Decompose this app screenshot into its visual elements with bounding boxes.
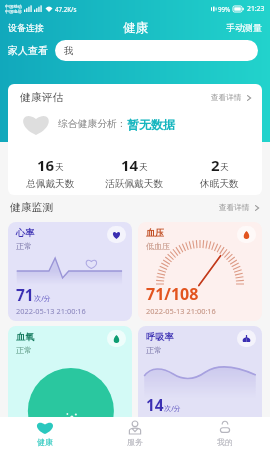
staticText: 血氧 (16, 331, 35, 343)
other: Blood oxygen (107, 330, 126, 347)
button[interactable]: 71/108 (138, 222, 262, 321)
button[interactable]: 14 (138, 326, 262, 425)
button[interactable]: 服务 (90, 417, 180, 450)
staticText: 中国移动 (5, 4, 22, 9)
staticText: 呼吸率 (146, 331, 174, 343)
staticText: 综合健康分析： (58, 118, 127, 130)
button[interactable]: 我的 (180, 417, 270, 450)
staticText: 心率 (16, 227, 35, 239)
staticText: 手动测量 (226, 22, 262, 33)
button[interactable]: 手动测量 (220, 20, 270, 35)
button[interactable]: 设备连接 (0, 20, 50, 35)
button[interactable]: 我 (55, 40, 258, 61)
button[interactable]: 查看详情 (211, 93, 253, 103)
staticText: 2022-05-13 21:00:16 (146, 306, 216, 316)
staticText: 2022-05-13 21:00:16 (16, 306, 86, 316)
staticText: 中国电信 (5, 9, 22, 14)
staticText: 天 (139, 162, 148, 173)
other: Respiratory rate (237, 330, 256, 347)
staticText: 正常 (16, 345, 32, 355)
staticText: 低血压 (146, 241, 170, 251)
staticText: 21:23 (247, 4, 265, 13)
staticText: 设备连接 (8, 22, 44, 33)
staticText: 查看详情 (211, 93, 242, 103)
staticText: 家人查看 (8, 44, 48, 57)
button[interactable]: 16 (8, 154, 92, 190)
staticText: 正常 (16, 241, 32, 251)
button[interactable]: 2 (177, 154, 262, 190)
button[interactable]: 查看详情 (219, 203, 261, 213)
staticText: 查看详情 (219, 203, 250, 213)
other: Blood pressure (237, 226, 256, 243)
staticText: 99% (218, 5, 231, 13)
staticText: 健康监测 (10, 201, 54, 215)
button[interactable]: 71 (8, 222, 132, 321)
button[interactable]: 14 (92, 154, 177, 190)
staticText: 16 (37, 155, 55, 175)
staticText: 天 (220, 162, 229, 173)
staticText: 2 (211, 155, 220, 175)
staticText: 服务 (127, 437, 143, 447)
staticText: 47.2K/s (55, 5, 77, 13)
staticText: 我 (64, 45, 74, 57)
other: Heart rate (107, 226, 126, 243)
staticText: 血压 (146, 227, 165, 239)
staticText: 14 (146, 394, 164, 415)
staticText: 71 (16, 284, 34, 305)
staticText: 天 (55, 162, 64, 173)
staticText: 健康 (123, 20, 148, 36)
staticText: 正常 (146, 345, 162, 355)
staticText: 71/108 (146, 283, 199, 305)
button[interactable]: 血氧 (8, 326, 132, 425)
staticText: 14 (121, 155, 139, 175)
staticText: 我的 (217, 437, 233, 447)
staticText: 活跃佩戴天数 (105, 178, 164, 190)
staticText: 休眠天数 (200, 178, 239, 190)
staticText: 次/分 (164, 403, 182, 413)
button[interactable]: 健康 (0, 417, 90, 450)
staticText: 次/分 (34, 293, 52, 303)
staticText: 健康评估 (20, 91, 64, 105)
staticText: 暂无数据 (127, 117, 175, 132)
staticText: 健康 (37, 437, 53, 447)
staticText: 总佩戴天数 (26, 178, 75, 190)
button[interactable]: 健康评估 (8, 84, 262, 195)
